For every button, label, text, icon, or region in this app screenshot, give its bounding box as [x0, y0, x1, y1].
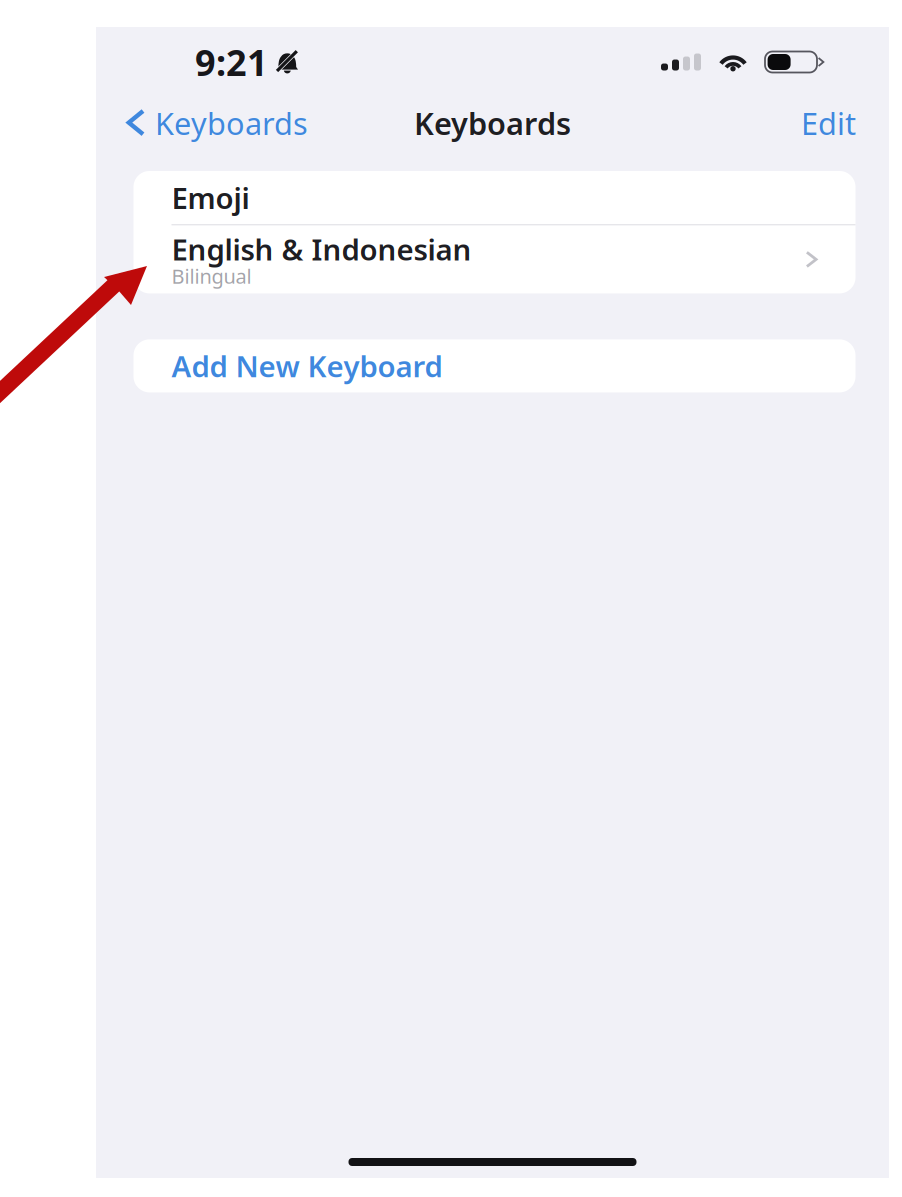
staticText: Edit — [801, 103, 856, 143]
button[interactable]: Edit — [789, 97, 889, 149]
button[interactable]: English & Indonesian — [133, 225, 855, 293]
staticText: 9:21 — [195, 38, 268, 86]
staticText: Bilingual — [171, 263, 251, 289]
staticText: Keyboards — [414, 103, 571, 143]
button[interactable]: Keyboards — [96, 97, 320, 149]
staticText: Keyboards — [155, 103, 308, 143]
staticText: Add New Keyboard — [171, 346, 442, 385]
button[interactable]: Add New Keyboard — [133, 339, 855, 392]
staticText: English & Indonesian — [171, 230, 471, 269]
button[interactable]: Emoji — [133, 171, 855, 224]
staticText: Emoji — [171, 178, 249, 217]
